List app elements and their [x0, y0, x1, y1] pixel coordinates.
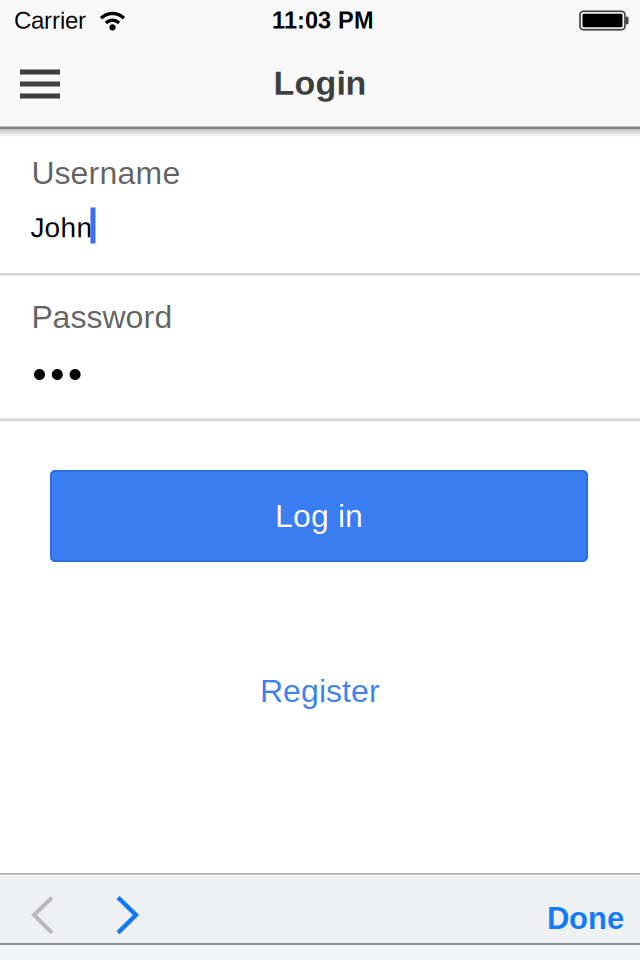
staticText: Done — [547, 901, 624, 936]
staticText: Username — [31, 155, 180, 191]
button[interactable]: Password, secure text field — [0, 275, 640, 418]
button[interactable]: Register — [0, 673, 640, 709]
button[interactable]: Done — [547, 901, 624, 936]
button[interactable]: Next field — [115, 895, 139, 935]
staticText: Password — [31, 299, 172, 335]
staticText: Carrier — [14, 7, 86, 34]
staticText: John — [30, 212, 92, 243]
button[interactable]: Log in — [50, 470, 588, 562]
button[interactable]: Previous field — [31, 895, 55, 935]
staticText: Register — [260, 673, 380, 709]
button[interactable]: Username, text field — [0, 131, 640, 273]
staticText: Login — [273, 64, 366, 102]
staticText: Log in — [275, 498, 363, 534]
button[interactable]: Menu — [6, 56, 74, 112]
staticText: 11:03 PM — [272, 7, 374, 33]
